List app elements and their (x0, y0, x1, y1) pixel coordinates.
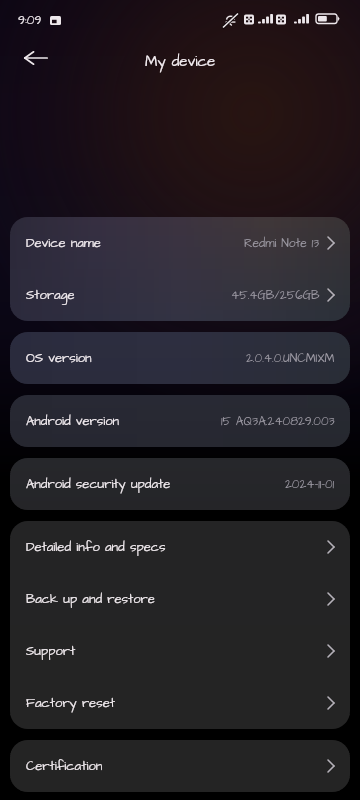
staticText: Support (26, 642, 76, 660)
button[interactable]: Android security update (10, 458, 350, 510)
staticText: 2.0.4.0.UNCMIXM (246, 350, 335, 367)
button[interactable]: OS version (10, 332, 350, 384)
button[interactable]: Back (12, 40, 60, 76)
staticText: Storage (26, 286, 75, 304)
staticText: Device name (26, 234, 101, 252)
staticText: Back up and restore (26, 590, 155, 608)
button[interactable]: Android version (10, 395, 350, 447)
staticText: 2024-11-01 (285, 476, 335, 493)
button[interactable]: Factory reset (10, 677, 350, 729)
button[interactable]: Support (10, 625, 350, 677)
staticText: My device (145, 51, 216, 72)
staticText: Certification (26, 757, 103, 775)
button[interactable]: Back up and restore (10, 573, 350, 625)
staticText: Factory reset (26, 694, 115, 712)
button[interactable]: Device name (10, 217, 350, 269)
button[interactable]: Storage (10, 269, 350, 321)
staticText: 15 AQ3A.240829.003 (221, 413, 335, 430)
staticText: Detailed info and specs (26, 538, 166, 556)
staticText: 45.4GB/256GB (231, 287, 320, 304)
staticText: Redmi Note 13 (244, 235, 320, 252)
staticText: OS version (26, 349, 92, 367)
staticText: 9:09 (18, 12, 42, 29)
button[interactable]: Certification (10, 740, 350, 792)
staticText: Android version (26, 412, 120, 430)
button[interactable]: Detailed info and specs (10, 521, 350, 573)
staticText: Android security update (26, 475, 171, 493)
